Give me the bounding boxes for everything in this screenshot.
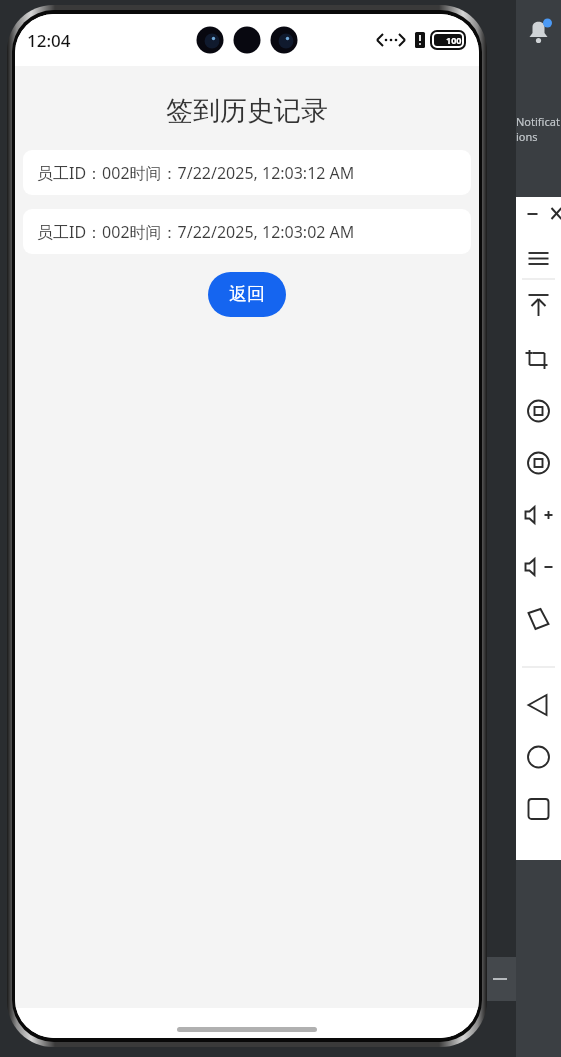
staticText: 员工ID：002时间：7/22/2025, 12:03:12 AM xyxy=(37,162,355,184)
staticText: 100 xyxy=(446,34,462,46)
staticText: 返回 xyxy=(229,283,265,306)
button[interactable]: Collapse xyxy=(484,957,516,1001)
button[interactable]: 员工ID：002时间：7/22/2025, 12:03:12 AM xyxy=(23,150,471,195)
staticText: Notifications xyxy=(516,114,561,144)
staticText: 12:04 xyxy=(27,29,71,52)
button[interactable]: 返回 xyxy=(208,272,286,317)
staticText: 签到历史记录 xyxy=(15,94,479,128)
staticText: 员工ID：002时间：7/22/2025, 12:03:02 AM xyxy=(37,221,355,243)
button[interactable]: 员工ID：002时间：7/22/2025, 12:03:02 AM xyxy=(23,209,471,254)
button[interactable]: Notifications xyxy=(516,0,561,197)
